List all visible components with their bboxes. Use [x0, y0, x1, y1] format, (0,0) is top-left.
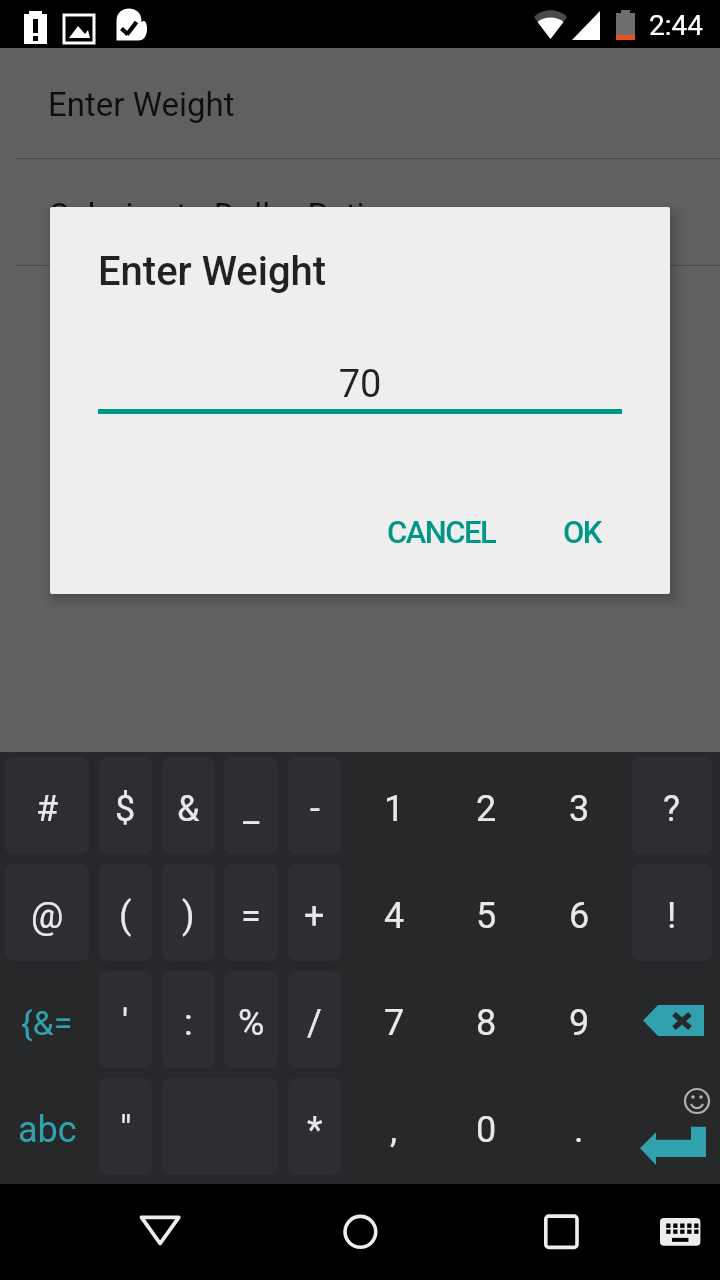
staticText: 7	[384, 1002, 405, 1044]
staticText: #	[36, 788, 59, 830]
staticText: 6	[569, 895, 590, 937]
button[interactable]: Backspace	[632, 971, 712, 1068]
button[interactable]: abc	[5, 1078, 89, 1175]
button[interactable]: ?	[632, 757, 712, 854]
button[interactable]: "	[99, 1078, 152, 1175]
staticText: 8	[476, 1002, 497, 1044]
button[interactable]: Enter Weight	[0, 50, 720, 158]
staticText: /	[307, 1002, 322, 1044]
staticText: Enter Weight	[48, 85, 235, 124]
button[interactable]: OK	[530, 498, 634, 566]
staticText: 2:44	[649, 9, 703, 42]
button[interactable]: $	[99, 757, 152, 854]
button[interactable]: 9	[533, 971, 625, 1068]
staticText: -	[310, 788, 320, 830]
staticText: OK	[563, 514, 601, 550]
staticText: %	[238, 1002, 265, 1044]
button[interactable]: 1	[348, 757, 440, 854]
staticText: CANCEL	[387, 514, 496, 550]
staticText: )	[182, 895, 195, 937]
button[interactable]: 7	[348, 971, 440, 1068]
button[interactable]: !	[632, 864, 712, 961]
staticText: ?	[663, 788, 681, 830]
button[interactable]: %	[224, 971, 278, 1068]
staticText: 4	[384, 895, 405, 937]
staticText: "	[120, 1109, 132, 1151]
button[interactable]: @	[5, 864, 89, 961]
button[interactable]: +	[288, 864, 341, 961]
button[interactable]: {&=	[5, 971, 89, 1068]
staticText: abc	[18, 1109, 77, 1151]
staticText: 5	[476, 895, 497, 937]
button[interactable]: 4	[348, 864, 440, 961]
button[interactable]: Switch keyboard	[645, 1200, 715, 1264]
staticText: $	[115, 788, 136, 830]
button[interactable]: (	[99, 864, 152, 961]
button[interactable]: Enter	[632, 1078, 712, 1175]
button[interactable]: 0	[440, 1078, 532, 1175]
button[interactable]: CANCEL	[353, 498, 529, 566]
button[interactable]: 2	[440, 757, 532, 854]
button[interactable]: -	[288, 757, 341, 854]
button[interactable]: 6	[533, 864, 625, 961]
button[interactable]: )	[162, 864, 215, 961]
staticText: _	[243, 788, 260, 830]
button[interactable]: 3	[533, 757, 625, 854]
button[interactable]: .	[533, 1078, 625, 1175]
button[interactable]: ,	[348, 1078, 440, 1175]
button[interactable]: &	[162, 757, 215, 854]
staticText: 1	[384, 788, 405, 830]
button[interactable]: :	[162, 971, 215, 1068]
staticText: {&=	[21, 1003, 73, 1043]
button[interactable]: =	[224, 864, 278, 961]
button[interactable]: Back	[120, 1200, 200, 1264]
staticText: 2	[476, 788, 497, 830]
staticText: 3	[569, 788, 590, 830]
staticText: 0	[476, 1109, 497, 1151]
staticText: Calories to Dollar Ratio	[48, 196, 384, 235]
button[interactable]: _	[224, 757, 278, 854]
staticText: =	[241, 895, 261, 937]
staticText: Enter Weight	[98, 248, 327, 295]
staticText: @	[31, 895, 64, 937]
staticText: 9	[569, 1002, 590, 1044]
button[interactable]: Home	[320, 1200, 400, 1264]
staticText: '	[122, 1002, 129, 1044]
staticText: !	[667, 895, 677, 937]
button[interactable]: #	[5, 757, 89, 854]
button[interactable]: 5	[440, 864, 532, 961]
button[interactable]: 8	[440, 971, 532, 1068]
staticText: :	[184, 1002, 193, 1044]
button[interactable]: Recents	[520, 1200, 600, 1264]
button[interactable]: Calories to Dollar Ratio	[0, 159, 720, 265]
staticText: *	[307, 1109, 323, 1151]
staticText: (	[119, 895, 132, 937]
staticText: .	[574, 1109, 584, 1151]
staticText: ,	[390, 1109, 398, 1151]
staticText: 70	[98, 362, 622, 407]
button[interactable]: '	[99, 971, 152, 1068]
button[interactable]: *	[288, 1078, 341, 1175]
button[interactable]: /	[288, 971, 341, 1068]
staticText: &	[177, 788, 200, 830]
staticText: +	[304, 895, 325, 937]
